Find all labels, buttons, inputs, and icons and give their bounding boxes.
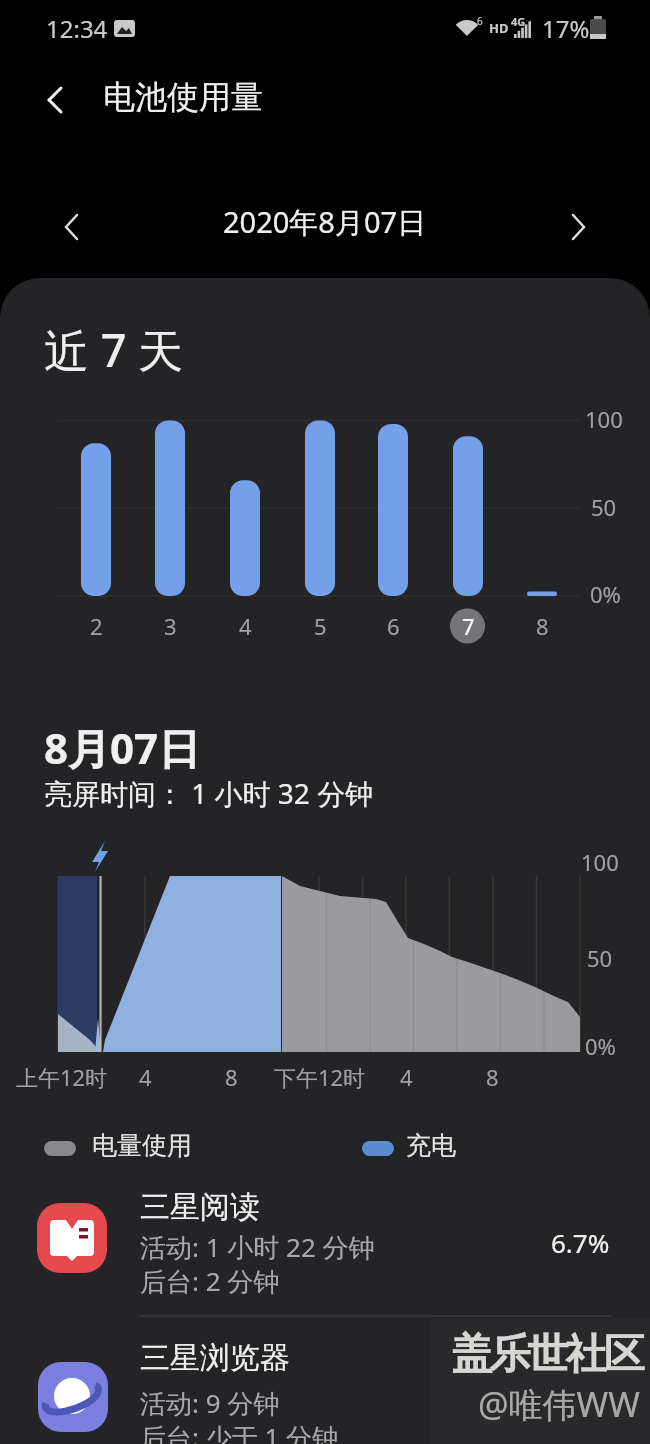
staticText: 100: [581, 847, 619, 877]
staticText: 近 7 天: [44, 319, 184, 380]
staticText: 4G: [511, 14, 526, 29]
staticText: 6: [477, 14, 483, 28]
staticText: 4: [400, 1062, 413, 1092]
staticText: 17%: [542, 12, 590, 45]
staticText: 上午12时: [16, 1062, 108, 1092]
staticText: 4: [239, 611, 252, 641]
staticText: 活动: 1 小时 22 分钟: [140, 1229, 375, 1265]
staticText: 50: [591, 492, 617, 522]
staticText: 8: [486, 1062, 499, 1092]
staticText: 0%: [590, 579, 621, 609]
button[interactable]: [44, 200, 100, 256]
button[interactable]: [0, 1184, 650, 1316]
staticText: 活动: 9 分钟: [140, 1385, 280, 1421]
button[interactable]: [444, 602, 492, 650]
staticText: 充电: [406, 1130, 456, 1161]
staticText: 后台: 2 分钟: [140, 1263, 280, 1299]
staticText: 0%: [585, 1031, 616, 1061]
staticText: 6: [387, 611, 400, 641]
staticText: HD: [489, 19, 509, 37]
staticText: 7: [462, 611, 475, 641]
staticText: 8月07日: [44, 719, 201, 776]
staticText: 12:34: [46, 12, 108, 45]
button[interactable]: [30, 72, 86, 128]
staticText: @唯伟WW: [478, 1381, 640, 1427]
staticText: 6.7%: [551, 1225, 610, 1260]
staticText: 电量使用: [92, 1130, 192, 1161]
staticText: 下午12时: [274, 1062, 366, 1092]
button[interactable]: [550, 200, 606, 256]
staticText: 2: [90, 611, 103, 641]
staticText: 盖乐世社区: [453, 1329, 643, 1381]
staticText: 后台: 少于 1 分钟: [140, 1419, 339, 1444]
staticText: 三星阅读: [140, 1188, 260, 1226]
staticText: 4: [139, 1062, 152, 1092]
staticText: 8: [225, 1062, 238, 1092]
staticText: 50: [587, 943, 613, 973]
staticText: 电池使用量: [103, 77, 263, 117]
staticText: 三星浏览器: [140, 1339, 290, 1377]
staticText: 2020年8月07日: [223, 202, 427, 242]
staticText: 100: [585, 404, 623, 434]
button[interactable]: [0, 1330, 650, 1444]
staticText: 5: [314, 611, 327, 641]
staticText: 亮屏时间： 1 小时 32 分钟: [44, 774, 374, 812]
staticText: 8: [536, 611, 549, 641]
staticText: 3: [164, 611, 177, 641]
